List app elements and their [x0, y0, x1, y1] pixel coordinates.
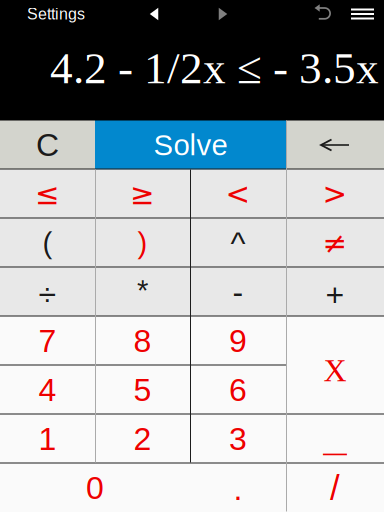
- staticText: C: [36, 127, 59, 163]
- button[interactable]: X: [286, 316, 384, 414]
- button[interactable]: 5: [95, 365, 190, 414]
- staticText: +: [325, 277, 344, 313]
- button[interactable]: +: [286, 267, 384, 316]
- button[interactable]: C: [0, 120, 95, 169]
- staticText: ^: [230, 225, 245, 261]
- button[interactable]: 8: [95, 316, 190, 365]
- staticText: -: [232, 274, 243, 310]
- button[interactable]: -: [190, 267, 286, 316]
- staticText: ): [137, 227, 147, 259]
- button[interactable]: Previous equation: [139, 1, 169, 27]
- button[interactable]: /: [286, 463, 384, 512]
- button[interactable]: .: [190, 463, 286, 512]
- button[interactable]: *: [95, 267, 190, 316]
- staticText: Settings: [27, 5, 85, 23]
- staticText: ÷: [38, 276, 56, 312]
- button[interactable]: 0: [0, 463, 190, 512]
- button[interactable]: Menu: [347, 1, 378, 27]
- button[interactable]: 4: [0, 365, 95, 414]
- button[interactable]: Backspace: [286, 120, 384, 169]
- staticText: 4: [38, 372, 56, 408]
- button[interactable]: —: [286, 414, 384, 463]
- button[interactable]: 3: [190, 414, 286, 463]
- button[interactable]: 9: [190, 316, 286, 365]
- staticText: 7: [38, 323, 56, 359]
- staticText: 4.2 - 1/2x ≤ - 3.5x: [50, 43, 379, 93]
- button[interactable]: Next equation: [208, 1, 238, 27]
- staticText: 3: [229, 421, 247, 457]
- button[interactable]: ÷: [0, 267, 95, 316]
- staticText: 0: [86, 470, 104, 506]
- staticText: X: [323, 353, 346, 388]
- button[interactable]: 2: [95, 414, 190, 463]
- staticText: /: [330, 469, 340, 507]
- button[interactable]: Solve: [95, 120, 286, 169]
- button[interactable]: Undo: [308, 1, 338, 27]
- button[interactable]: Settings: [18, 1, 94, 27]
- staticText: 6: [229, 372, 247, 408]
- staticText: Solve: [153, 129, 227, 161]
- staticText: ≤: [35, 177, 60, 211]
- staticText: 2: [133, 421, 151, 457]
- staticText: 5: [133, 372, 151, 408]
- staticText: >: [322, 177, 347, 211]
- staticText: 9: [229, 323, 247, 359]
- button[interactable]: 7: [0, 316, 95, 365]
- button[interactable]: (: [0, 218, 95, 267]
- button[interactable]: 6: [190, 365, 286, 414]
- staticText: —: [323, 439, 347, 465]
- button[interactable]: ≤: [0, 169, 95, 218]
- staticText: *: [137, 274, 148, 306]
- staticText: ≥: [130, 177, 155, 211]
- button[interactable]: ≠: [286, 218, 384, 267]
- staticText: ≠: [322, 226, 347, 260]
- staticText: (: [42, 227, 52, 259]
- staticText: 1: [38, 421, 56, 457]
- button[interactable]: ≥: [95, 169, 190, 218]
- button[interactable]: <: [190, 169, 286, 218]
- staticText: <: [225, 177, 250, 211]
- button[interactable]: ^: [190, 218, 286, 267]
- button[interactable]: ): [95, 218, 190, 267]
- staticText: .: [233, 471, 242, 507]
- button[interactable]: >: [286, 169, 384, 218]
- staticText: 8: [133, 323, 151, 359]
- button[interactable]: 1: [0, 414, 95, 463]
